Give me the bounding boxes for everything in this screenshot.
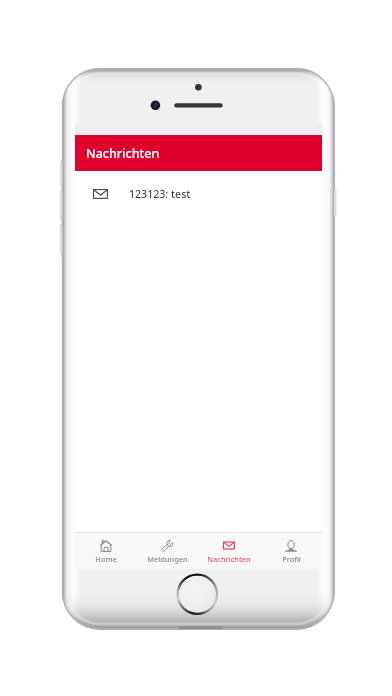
staticText: Home — [95, 554, 117, 564]
button[interactable]: 123123: test — [75, 171, 322, 216]
staticText: 123123: test — [129, 187, 191, 201]
button[interactable]: Profil — [260, 532, 322, 569]
staticText: Profil — [282, 554, 301, 564]
button[interactable]: Home — [75, 532, 136, 569]
staticText: Nachrichten — [207, 554, 251, 564]
staticText: Meldungen — [147, 554, 188, 564]
button[interactable]: Nachrichten — [198, 532, 260, 569]
button[interactable]: Meldungen — [136, 532, 198, 569]
staticText: Nachrichten — [86, 145, 160, 162]
